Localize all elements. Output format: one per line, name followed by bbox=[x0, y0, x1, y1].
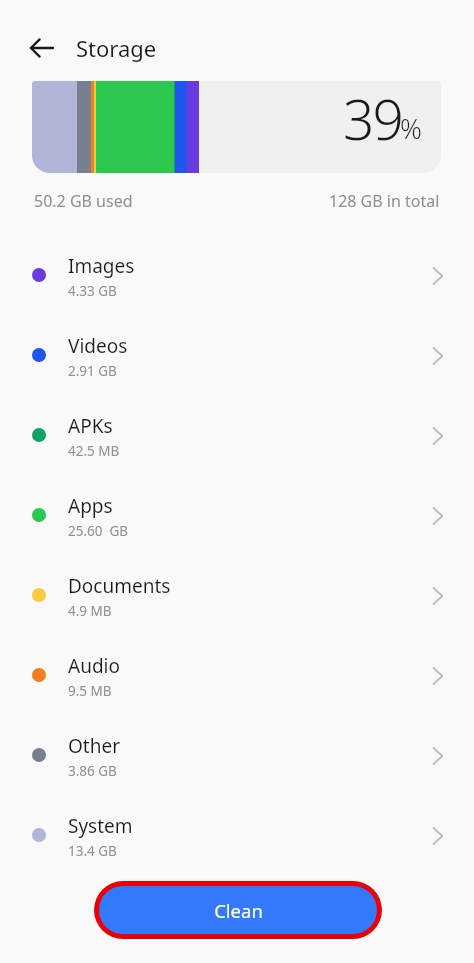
staticText: Clean bbox=[214, 898, 263, 923]
staticText: Apps bbox=[68, 493, 113, 519]
staticText: 25.60 GB bbox=[68, 522, 129, 540]
staticText: 50.2 GB used bbox=[34, 190, 133, 212]
staticText: System bbox=[68, 813, 133, 839]
staticText: 9.5 MB bbox=[68, 682, 112, 700]
staticText: Other bbox=[68, 733, 121, 759]
staticText: Audio bbox=[68, 653, 120, 679]
button[interactable]: Videos bbox=[0, 316, 474, 396]
staticText: 13.4 GB bbox=[68, 842, 117, 860]
staticText: % bbox=[400, 110, 422, 147]
staticText: 4.9 MB bbox=[68, 602, 112, 620]
staticText: 39 bbox=[343, 81, 402, 156]
button[interactable]: APKs bbox=[0, 396, 474, 476]
staticText: Images bbox=[68, 253, 135, 279]
button[interactable]: Other bbox=[0, 716, 474, 796]
staticText: 42.5 MB bbox=[68, 442, 120, 460]
button[interactable]: Images bbox=[0, 236, 474, 316]
staticText: 3.86 GB bbox=[68, 762, 117, 780]
button[interactable]: Documents bbox=[0, 556, 474, 636]
staticText: 128 GB in total bbox=[329, 190, 440, 212]
button[interactable]: Apps bbox=[0, 476, 474, 556]
button[interactable]: Back bbox=[30, 36, 54, 60]
staticText: Storage bbox=[76, 33, 157, 63]
staticText: APKs bbox=[68, 413, 113, 439]
button[interactable]: System bbox=[0, 796, 474, 876]
button[interactable]: Clean bbox=[99, 886, 377, 934]
staticText: 2.91 GB bbox=[68, 362, 117, 380]
staticText: Documents bbox=[68, 573, 171, 599]
staticText: 4.33 GB bbox=[68, 282, 117, 300]
button[interactable]: Audio bbox=[0, 636, 474, 716]
staticText: Videos bbox=[68, 333, 128, 359]
